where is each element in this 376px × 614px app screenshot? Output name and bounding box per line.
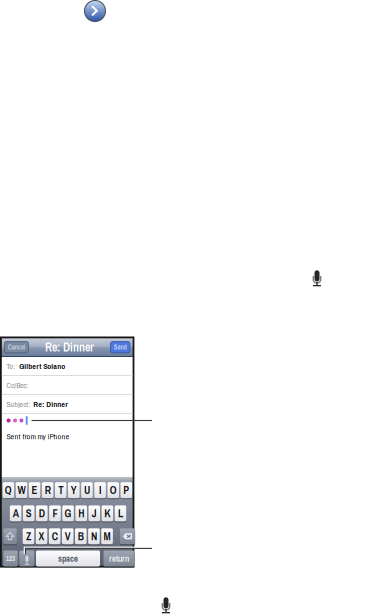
staticText: Subject: (6, 399, 30, 409)
button[interactable]: N (88, 528, 100, 544)
button[interactable]: G (62, 505, 74, 521)
staticText: L (118, 506, 123, 521)
staticText: 123 (6, 554, 15, 563)
staticText: Sent from my iPhone (7, 431, 70, 442)
button[interactable]: O (107, 482, 119, 498)
staticText: V (65, 529, 71, 543)
button[interactable] (19, 550, 34, 566)
button[interactable]: K (101, 505, 113, 521)
staticText: H (78, 506, 84, 521)
staticText: D (39, 506, 45, 521)
button[interactable]: X (36, 528, 47, 544)
button[interactable] (3, 528, 17, 544)
button[interactable]: R (42, 482, 53, 498)
button[interactable]: I (94, 482, 106, 498)
staticText: Send (114, 343, 127, 351)
button[interactable]: U (81, 482, 93, 498)
staticText: O (110, 483, 117, 497)
staticText: Gilbert Solano (19, 361, 65, 371)
button[interactable]: Q (2, 482, 14, 498)
staticText: T (58, 483, 63, 497)
staticText: Re: Dinner (45, 339, 94, 355)
button[interactable]: H (75, 505, 87, 521)
staticText: Cc/Bcc: (6, 380, 28, 390)
button[interactable]: return (103, 550, 135, 566)
button[interactable]: 123 (3, 550, 18, 566)
button[interactable]: space (36, 550, 100, 566)
staticText: B (78, 529, 84, 543)
staticText: Q (5, 483, 12, 497)
staticText: space (58, 553, 78, 564)
button[interactable]: L (115, 505, 126, 521)
button[interactable]: Next (84, 0, 105, 21)
button[interactable]: E (29, 482, 40, 498)
button[interactable]: S (23, 505, 35, 521)
staticText: E (31, 483, 37, 497)
staticText: S (26, 506, 32, 521)
staticText: I (99, 483, 101, 497)
button[interactable]: Y (68, 482, 80, 498)
staticText: To: (6, 361, 15, 371)
button[interactable]: D (36, 505, 48, 521)
staticText: A (13, 506, 19, 521)
staticText: P (123, 483, 129, 497)
button[interactable]: B (75, 528, 87, 544)
button[interactable]: T (55, 482, 67, 498)
button[interactable] (120, 528, 135, 544)
staticText: N (91, 529, 97, 543)
staticText: F (52, 506, 57, 521)
staticText: Z (26, 529, 31, 543)
staticText: C (52, 529, 58, 543)
button[interactable]: J (88, 505, 100, 521)
button[interactable]: W (16, 482, 27, 498)
button[interactable]: A (10, 505, 21, 521)
button[interactable]: Send (110, 341, 130, 353)
staticText: Cancel (8, 343, 25, 351)
staticText: G (64, 506, 71, 521)
staticText: M (103, 529, 110, 543)
button[interactable]: F (49, 505, 61, 521)
button[interactable]: C (49, 528, 60, 544)
staticText: X (38, 529, 44, 543)
staticText: K (104, 506, 110, 521)
staticText: return (109, 553, 129, 564)
staticText: W (17, 483, 25, 497)
button[interactable]: Cancel (4, 341, 28, 353)
button[interactable]: V (62, 528, 74, 544)
staticText: Re: Dinner (33, 399, 68, 409)
button[interactable]: Z (23, 528, 34, 544)
staticText: R (45, 483, 51, 497)
staticText: U (84, 483, 90, 497)
staticText: Y (71, 483, 77, 497)
staticText: J (92, 506, 97, 521)
button[interactable]: P (120, 482, 132, 498)
button[interactable]: M (101, 528, 113, 544)
